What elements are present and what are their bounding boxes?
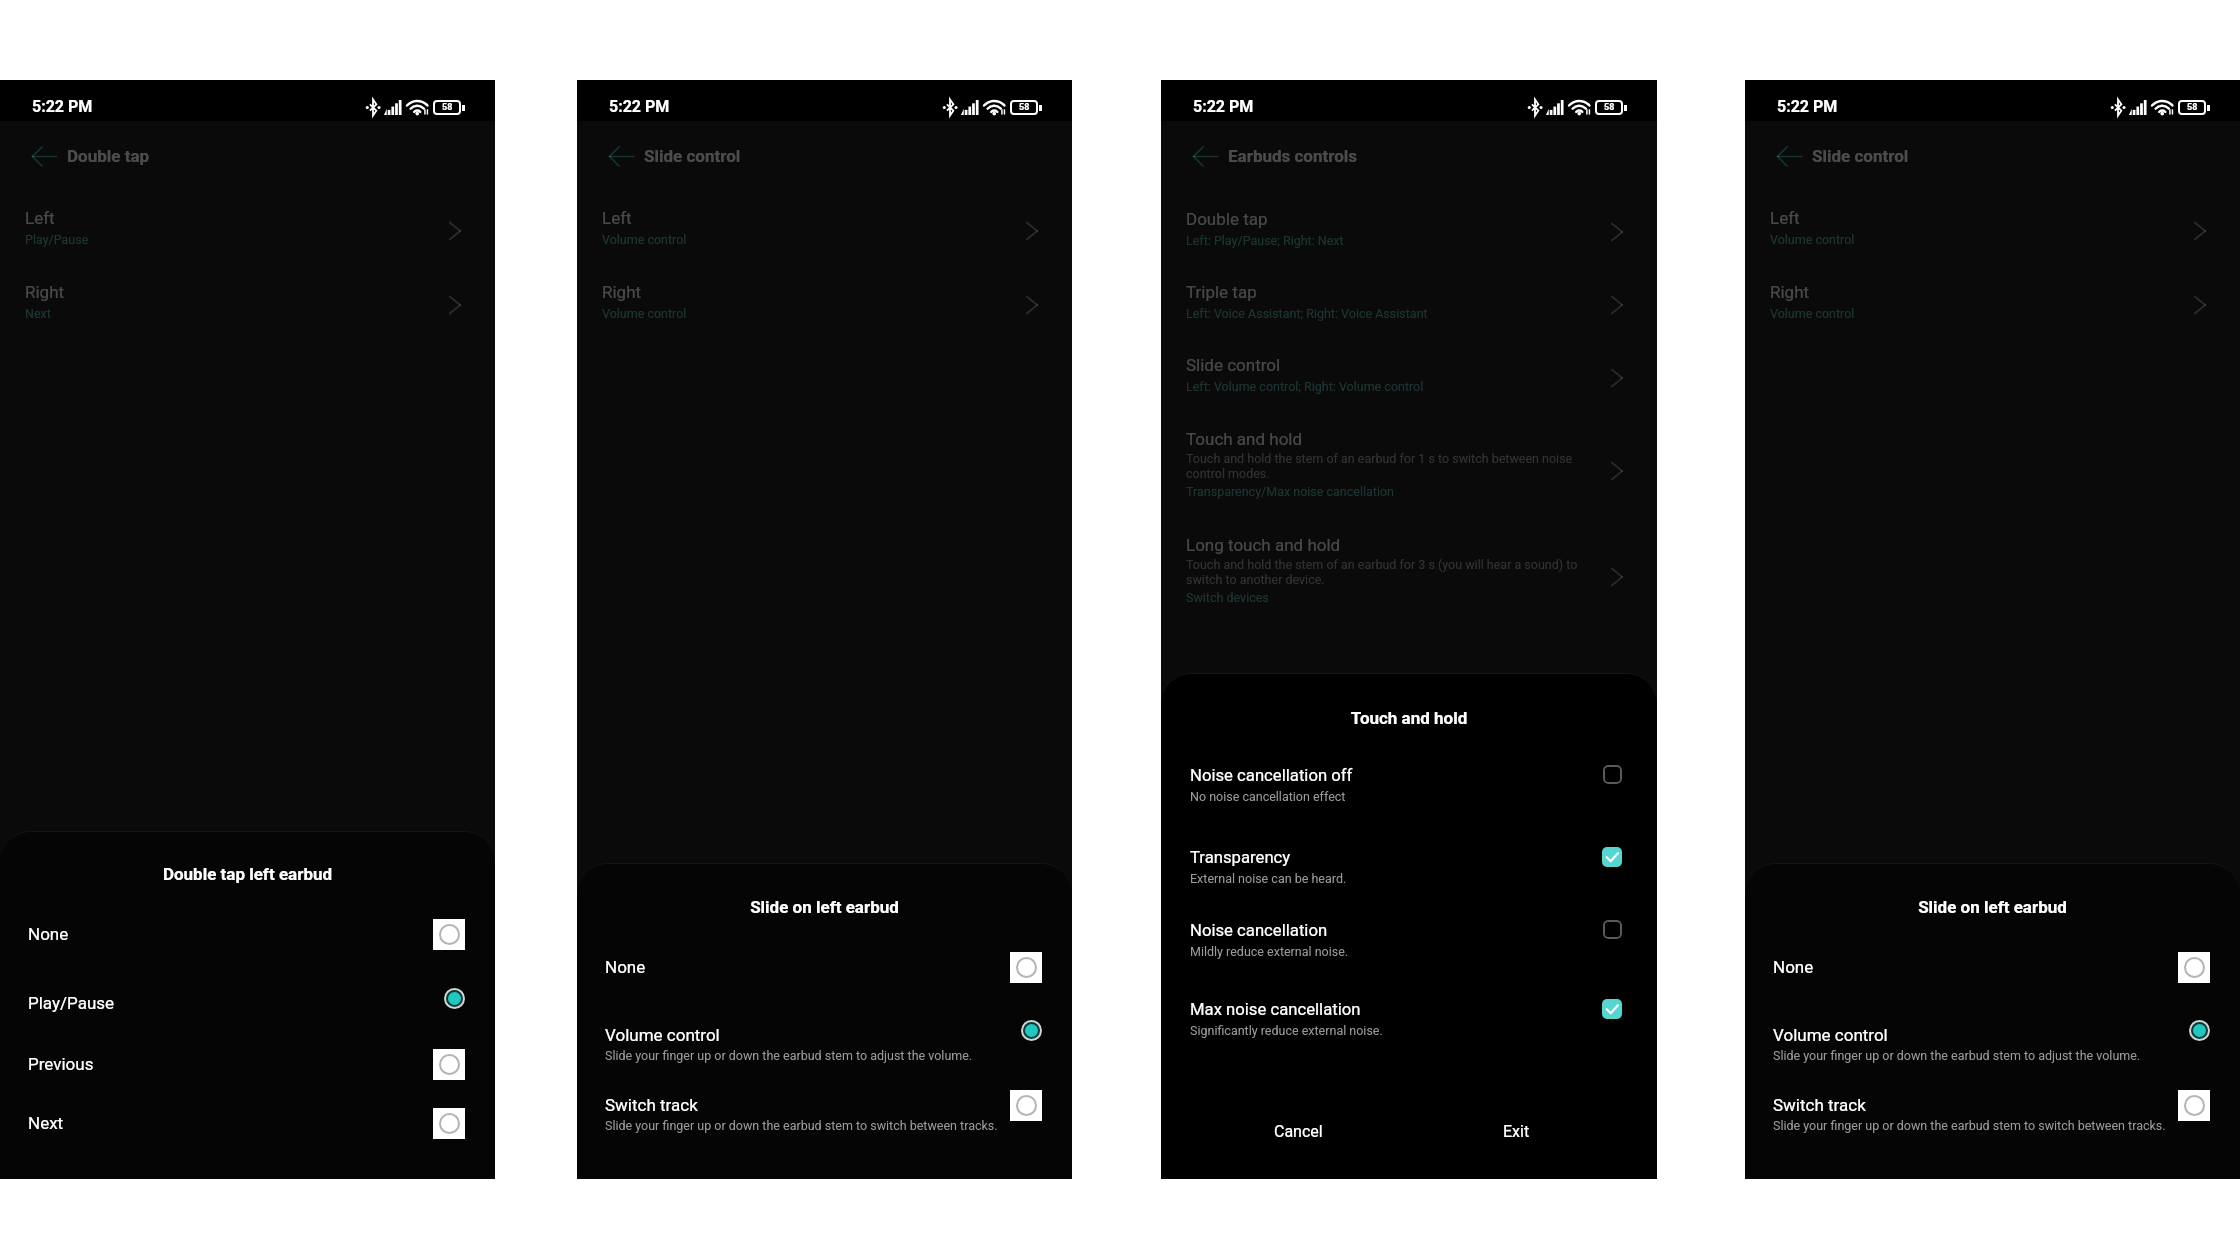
staticText: Mildly reduce external noise. [1190, 944, 1349, 959]
staticText: Exit [1503, 1122, 1530, 1141]
button[interactable]: Touch and hold [1161, 426, 1657, 532]
button[interactable]: Left [0, 205, 495, 279]
staticText: Next [28, 1113, 64, 1133]
staticText: Right [1770, 282, 1810, 302]
staticText: Double tap [1186, 209, 1268, 229]
staticText: Noise cancellation [1190, 921, 1328, 941]
staticText: 58 [2187, 102, 2198, 113]
button[interactable]: Switch track [577, 1091, 1072, 1153]
staticText: Volume control [1770, 232, 1855, 247]
button[interactable]: Back [599, 135, 643, 177]
staticText: Double tap [67, 146, 150, 166]
button[interactable]: Volume control [1745, 1021, 2240, 1083]
staticText: Left [25, 208, 55, 228]
staticText: Triple tap [1186, 282, 1257, 302]
staticText: Touch and hold the stem of an earbud for… [1186, 557, 1595, 587]
staticText: Slide on left earbud [577, 897, 1072, 917]
staticText: 5:22 PM [32, 97, 93, 116]
button[interactable]: Left [577, 205, 1072, 279]
button[interactable]: None [0, 920, 495, 964]
staticText: 58 [1019, 102, 1030, 113]
staticText: Noise cancellation off [1190, 766, 1353, 786]
staticText: Slide your finger up or down the earbud … [605, 1048, 973, 1063]
button[interactable]: Play/Pause [0, 989, 495, 1033]
staticText: None [1773, 957, 1814, 977]
staticText: Volume control [602, 306, 687, 321]
staticText: External noise can be heard. [1190, 871, 1347, 886]
staticText: Long touch and hold [1186, 535, 1341, 555]
staticText: Touch and hold the stem of an earbud for… [1186, 451, 1595, 481]
staticText: Switch devices [1186, 590, 1269, 605]
staticText: Volume control [602, 232, 687, 247]
staticText: Left [602, 208, 632, 228]
staticText: 58 [1604, 102, 1615, 113]
staticText: 58 [442, 102, 453, 113]
button[interactable]: Next [0, 1109, 495, 1153]
staticText: Volume control [1770, 306, 1855, 321]
staticText: Volume control [1773, 1025, 1888, 1045]
button[interactable]: Max noise cancellation [1161, 996, 1657, 1054]
button[interactable]: Left [1745, 205, 2240, 279]
staticText: None [605, 957, 646, 977]
staticText: Slide on left earbud [1745, 897, 2240, 917]
staticText: Cancel [1274, 1122, 1323, 1141]
staticText: 5:22 PM [1777, 97, 1838, 116]
button[interactable]: None [1745, 953, 2240, 997]
staticText: Play/Pause [28, 993, 115, 1013]
staticText: Play/Pause [25, 232, 89, 247]
button[interactable]: Long touch and hold [1161, 532, 1657, 638]
staticText: Earbuds controls [1228, 146, 1358, 166]
button[interactable]: Previous [0, 1050, 495, 1094]
button[interactable]: Triple tap [1161, 279, 1657, 353]
button[interactable]: Switch track [1745, 1091, 2240, 1153]
staticText: Slide control [644, 146, 741, 166]
staticText: Switch track [1773, 1095, 1866, 1115]
staticText: Next [25, 306, 51, 321]
staticText: Double tap left earbud [0, 864, 495, 884]
staticText: Slide your finger up or down the earbud … [1773, 1118, 2166, 1133]
staticText: Right [602, 282, 642, 302]
staticText: Previous [28, 1054, 94, 1074]
staticText: Volume control [605, 1025, 720, 1045]
staticText: 5:22 PM [1193, 97, 1254, 116]
button[interactable]: Exit [1431, 1100, 1601, 1162]
button[interactable]: Back [1183, 135, 1227, 177]
staticText: Transparency [1190, 848, 1291, 868]
button[interactable]: Right [1745, 279, 2240, 353]
button[interactable]: Back [1767, 135, 1811, 177]
staticText: Left: Volume control; Right: Volume cont… [1186, 379, 1424, 394]
button[interactable]: Cancel [1213, 1100, 1383, 1162]
staticText: Left: Voice Assistant; Right: Voice Assi… [1186, 306, 1428, 321]
staticText: Slide your finger up or down the earbud … [1773, 1048, 2141, 1063]
staticText: Left [1770, 208, 1800, 228]
staticText: Slide your finger up or down the earbud … [605, 1118, 998, 1133]
staticText: Left: Play/Pause; Right: Next [1186, 233, 1344, 248]
staticText: None [28, 924, 69, 944]
button[interactable]: None [577, 953, 1072, 997]
button[interactable]: Volume control [577, 1021, 1072, 1083]
staticText: Transparency/Max noise cancellation [1186, 484, 1394, 499]
button[interactable]: Back [22, 135, 66, 177]
button[interactable]: Right [577, 279, 1072, 353]
staticText: Significantly reduce external noise. [1190, 1023, 1383, 1038]
staticText: Max noise cancellation [1190, 1000, 1361, 1020]
staticText: Slide control [1186, 355, 1281, 375]
staticText: Touch and hold [1161, 708, 1657, 728]
staticText: No noise cancellation effect [1190, 789, 1346, 804]
button[interactable]: Right [0, 279, 495, 353]
staticText: Touch and hold [1186, 429, 1303, 449]
staticText: Switch track [605, 1095, 698, 1115]
staticText: Slide control [1812, 146, 1909, 166]
staticText: 5:22 PM [609, 97, 670, 116]
button[interactable]: Noise cancellation [1161, 917, 1657, 975]
button[interactable]: Double tap [1161, 206, 1657, 280]
button[interactable]: Noise cancellation off [1161, 762, 1657, 820]
staticText: Right [25, 282, 65, 302]
button[interactable]: Transparency [1161, 844, 1657, 902]
button[interactable]: Slide control [1161, 352, 1657, 426]
